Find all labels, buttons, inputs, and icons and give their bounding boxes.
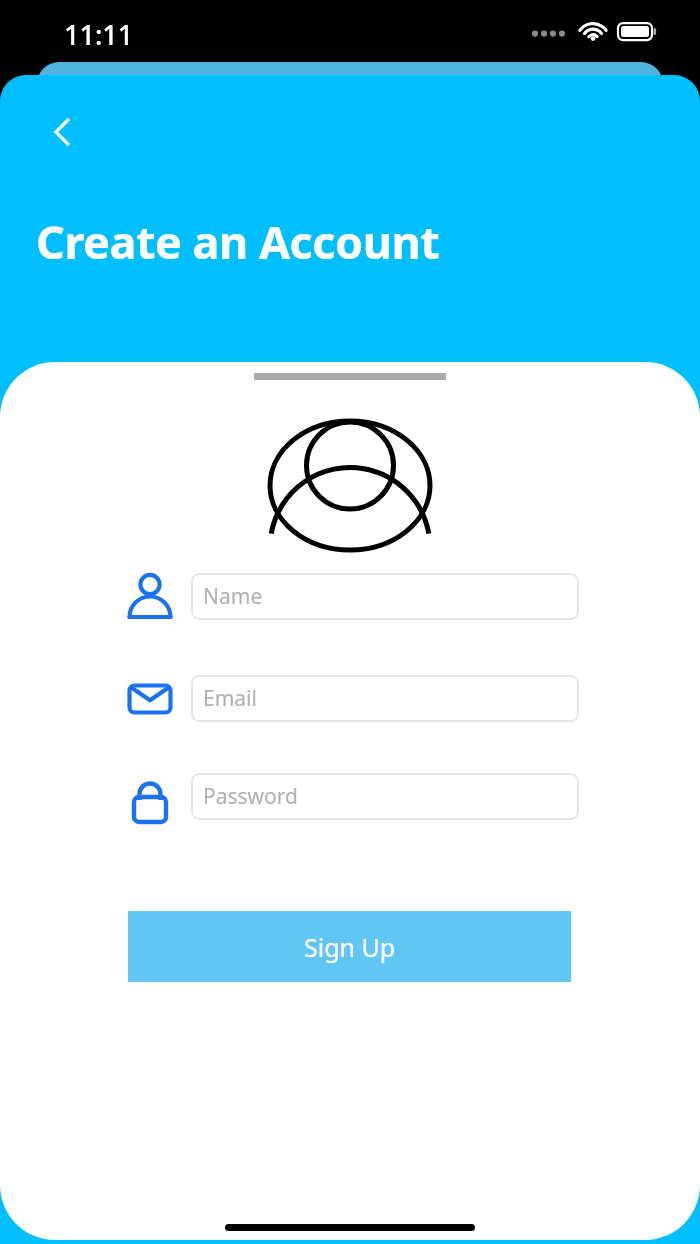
button[interactable]: Password — [124, 771, 176, 823]
staticText: Email — [203, 684, 257, 713]
staticText: 11:11 — [64, 16, 134, 53]
button[interactable]: Back — [40, 108, 88, 156]
button[interactable]: Name — [124, 571, 176, 623]
staticText: Name — [203, 582, 263, 611]
staticText: Create an Account — [36, 211, 440, 272]
button[interactable]: Sign Up — [128, 911, 571, 982]
button[interactable]: Email — [191, 675, 579, 722]
button[interactable]: Password — [191, 773, 579, 820]
button[interactable]: Email — [124, 673, 176, 725]
staticText: Sign Up — [304, 930, 396, 964]
staticText: Password — [203, 782, 298, 811]
button[interactable]: Name — [191, 573, 579, 620]
